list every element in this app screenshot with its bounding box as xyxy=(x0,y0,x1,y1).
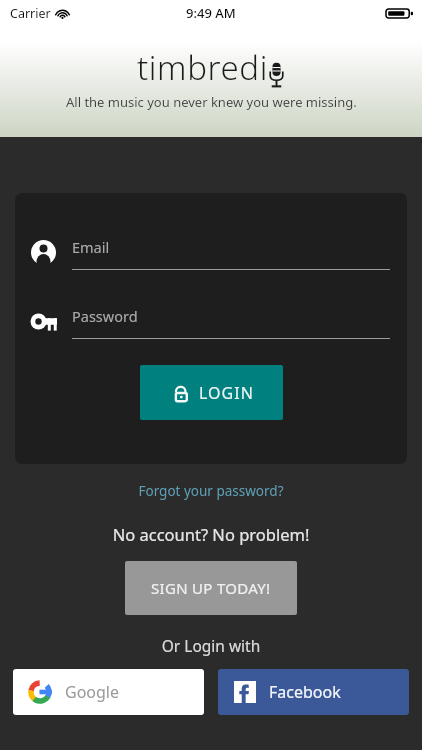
staticText: 9:49 AM xyxy=(186,4,236,22)
other: Microphone xyxy=(268,58,285,88)
staticText: Google xyxy=(65,681,120,703)
staticText: Facebook xyxy=(269,681,341,703)
button[interactable]: Facebook xyxy=(218,669,409,715)
button[interactable]: Google xyxy=(13,669,204,715)
staticText: Carrier xyxy=(10,5,51,22)
staticText: No account? No problem! xyxy=(0,523,422,545)
button[interactable]: LOGIN xyxy=(140,365,283,420)
staticText: SIGN UP TODAY! xyxy=(151,578,271,598)
staticText: Forgot your password? xyxy=(138,482,284,500)
staticText: All the music you never knew you were mi… xyxy=(66,93,357,111)
staticText: Password xyxy=(72,306,138,326)
staticText: Email xyxy=(72,237,110,257)
staticText: Or Login with xyxy=(0,635,422,656)
staticText: timbredi xyxy=(137,45,268,90)
staticText: LOGIN xyxy=(199,382,254,404)
button[interactable]: SIGN UP TODAY! xyxy=(125,561,297,615)
button[interactable]: Forgot your password? xyxy=(0,482,422,500)
